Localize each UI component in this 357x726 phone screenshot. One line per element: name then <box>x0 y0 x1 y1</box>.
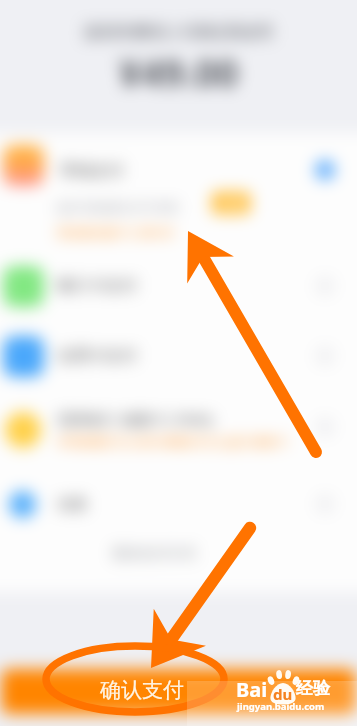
staticText: 零钱支付 <box>60 161 124 181</box>
staticText: jingyan.baidu.com <box>237 700 325 713</box>
button[interactable]: 更多支付方式 <box>0 537 357 569</box>
staticText: 优惠 <box>220 196 242 210</box>
staticText: 单笔限额5万元,每日限额20万元,超出请换卡 <box>57 433 289 449</box>
staticText: 信用卡支付 <box>57 346 137 366</box>
button[interactable]: 招商银行 储蓄卡 (7890) <box>0 391 357 469</box>
button[interactable]: 优惠 <box>0 469 357 539</box>
button[interactable]: 信用卡支付 <box>0 321 357 391</box>
staticText: ¥49.00 <box>119 46 239 98</box>
staticText: 深圳市腾讯 计算机系统司 <box>83 20 275 43</box>
staticText: 银行卡支付 <box>57 276 137 296</box>
other: Selected <box>315 160 335 180</box>
staticText: 确认支付 <box>100 677 184 703</box>
staticText: 招商银行 储蓄卡 (7890) <box>57 409 214 429</box>
staticText: 优惠 <box>57 495 87 514</box>
button[interactable]: 零钱支付 <box>0 133 357 251</box>
staticText: Bai <box>236 676 268 703</box>
staticText: 零钱通余额 ¥1,288.00 <box>56 224 174 240</box>
staticText: 经验 <box>296 678 330 699</box>
button[interactable]: 银行卡支付 <box>0 251 357 321</box>
button[interactable] <box>1 669 356 714</box>
staticText: du <box>273 684 293 704</box>
